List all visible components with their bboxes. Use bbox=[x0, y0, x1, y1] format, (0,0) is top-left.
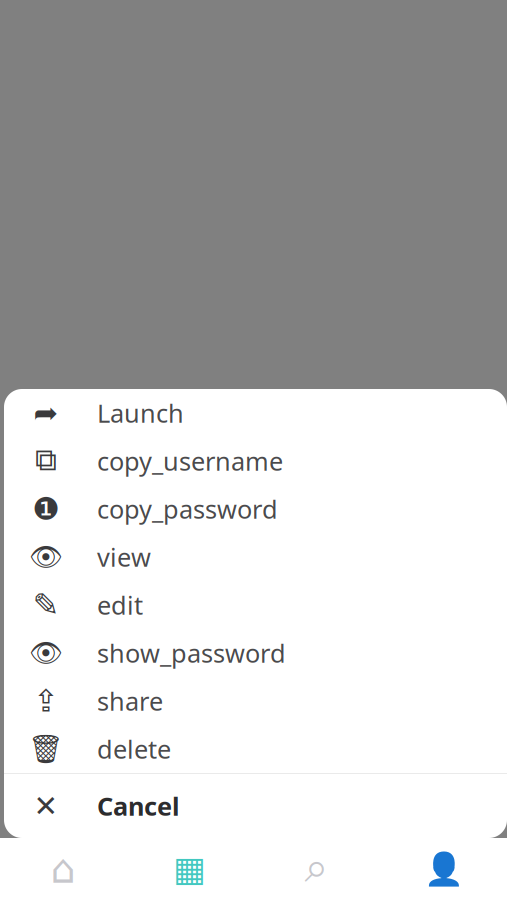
staticText: Launch bbox=[97, 396, 184, 430]
button[interactable]: Search bbox=[253, 838, 380, 900]
button[interactable]: ✎ bbox=[4, 581, 507, 629]
staticText: ⌂ bbox=[50, 846, 75, 892]
button[interactable]: 👁 bbox=[4, 629, 507, 677]
staticText: edit bbox=[97, 588, 143, 622]
staticText: ⌕ bbox=[304, 848, 328, 890]
staticText: view bbox=[97, 540, 151, 574]
button[interactable]: 👁 bbox=[4, 533, 507, 581]
button[interactable]: ✕ bbox=[4, 774, 507, 838]
staticText: ➦ bbox=[33, 396, 58, 430]
staticText: 👁 bbox=[29, 542, 63, 572]
staticText: 👤 bbox=[423, 851, 463, 887]
staticText: 👁 bbox=[29, 638, 63, 668]
button[interactable]: ➦ bbox=[4, 389, 507, 437]
staticText: delete bbox=[97, 732, 171, 766]
button[interactable]: ⧉ bbox=[4, 437, 507, 485]
button[interactable]: Categories bbox=[126, 838, 253, 900]
staticText: 🗑 bbox=[28, 733, 64, 765]
staticText: copy_username bbox=[97, 444, 283, 478]
button[interactable]: Home bbox=[0, 838, 126, 900]
staticText: ⧉ bbox=[35, 446, 57, 476]
staticText: show_password bbox=[97, 636, 286, 670]
button[interactable]: Profile bbox=[380, 838, 507, 900]
staticText: ✕ bbox=[33, 789, 58, 823]
button[interactable]: ❶ bbox=[4, 485, 507, 533]
staticText: share bbox=[97, 684, 163, 718]
staticText: ▦ bbox=[173, 849, 206, 889]
staticText: ❶ bbox=[32, 492, 59, 526]
staticText: copy_password bbox=[97, 492, 278, 526]
button[interactable]: ⇪ bbox=[4, 677, 507, 725]
button[interactable]: 🗑 bbox=[4, 725, 507, 773]
staticText: ⇪ bbox=[33, 684, 59, 718]
staticText: Cancel bbox=[97, 789, 180, 823]
staticText: ✎ bbox=[32, 587, 59, 623]
